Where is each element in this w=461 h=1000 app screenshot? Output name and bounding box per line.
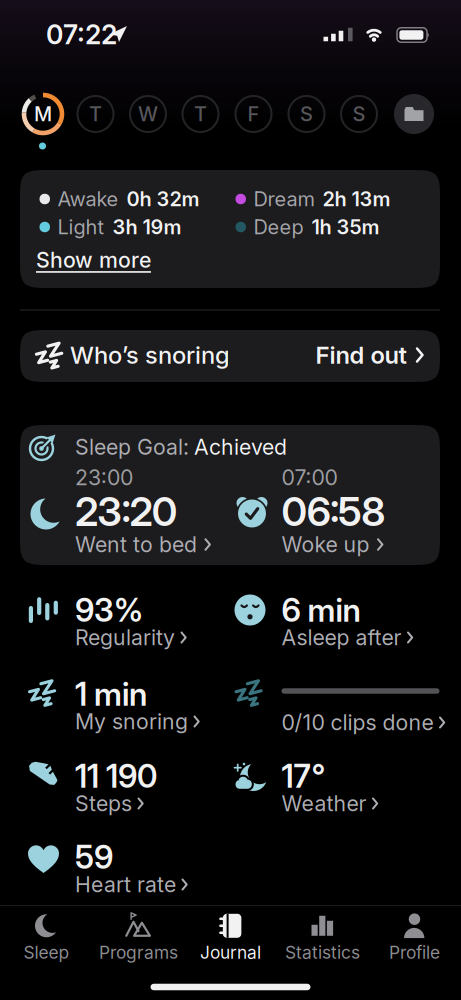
- button[interactable]: Went to bed: [75, 532, 211, 557]
- staticText: T: [194, 102, 207, 126]
- staticText: 23:20: [75, 487, 178, 536]
- staticText: Awake: [57, 187, 118, 211]
- staticText: Sleep: [23, 942, 69, 963]
- button[interactable]: All nights: [394, 94, 434, 134]
- staticText: Programs: [99, 942, 178, 963]
- staticText: 2h 13m: [322, 187, 390, 211]
- staticText: 6 min: [281, 591, 360, 629]
- button[interactable]: T: [73, 92, 117, 136]
- staticText: F: [247, 102, 259, 126]
- staticText: 07:00: [281, 465, 337, 490]
- button[interactable]: 1 min: [23, 664, 235, 740]
- staticText: Deep: [253, 215, 303, 239]
- staticText: Statistics: [285, 942, 360, 963]
- staticText: 1 min: [75, 675, 147, 713]
- button[interactable]: Show more: [36, 247, 151, 273]
- staticText: Light: [57, 215, 104, 239]
- staticText: Sleep Goal:: [75, 434, 189, 460]
- staticText: 23:00: [75, 465, 133, 490]
- staticText: Profile: [389, 942, 440, 963]
- staticText: 59: [75, 838, 113, 876]
- staticText: Woke up: [281, 532, 369, 557]
- staticText: 0h 32m: [126, 187, 199, 211]
- staticText: Weather: [281, 791, 366, 816]
- staticText: Show more: [36, 247, 151, 273]
- staticText: W: [138, 102, 158, 126]
- staticText: T: [89, 102, 102, 126]
- staticText: 3h 19m: [112, 215, 181, 239]
- button[interactable]: T: [178, 92, 222, 136]
- staticText: M: [34, 102, 52, 126]
- button[interactable]: 93%: [23, 580, 235, 656]
- staticText: Journal: [200, 942, 261, 963]
- button[interactable]: 59: [23, 827, 235, 903]
- button[interactable]: W: [126, 92, 170, 136]
- button[interactable]: Who’s snoring: [20, 330, 440, 382]
- staticText: 0/10 clips done: [281, 710, 433, 735]
- staticText: Achieved: [194, 434, 287, 460]
- button[interactable]: 0/10 clips done: [229, 664, 441, 740]
- staticText: Regularity: [75, 625, 175, 650]
- staticText: Dream: [253, 187, 314, 211]
- staticText: My snoring: [75, 709, 188, 734]
- button[interactable]: F: [231, 92, 275, 136]
- button[interactable]: Statistics: [276, 913, 368, 963]
- button[interactable]: M: [20, 91, 66, 137]
- button[interactable]: Woke up: [281, 532, 384, 557]
- staticText: Went to bed: [75, 532, 197, 557]
- staticText: S: [352, 102, 365, 126]
- button[interactable]: Profile: [368, 913, 460, 963]
- button[interactable]: S: [284, 92, 328, 136]
- button[interactable]: S: [337, 92, 381, 136]
- staticText: Heart rate: [75, 872, 176, 897]
- staticText: Asleep after: [281, 625, 401, 650]
- button[interactable]: 6 min: [229, 580, 441, 656]
- button[interactable]: Programs: [92, 913, 184, 963]
- button[interactable]: Sleep: [0, 913, 92, 963]
- staticText: 17°: [281, 757, 325, 795]
- button[interactable]: 17°: [229, 746, 441, 822]
- staticText: Find out: [315, 341, 406, 369]
- button[interactable]: 11 190: [23, 746, 235, 822]
- staticText: 06:58: [281, 487, 385, 536]
- staticText: 93%: [75, 591, 143, 629]
- staticText: 11 190: [75, 757, 157, 795]
- staticText: Steps: [75, 791, 132, 816]
- staticText: Who’s snoring: [70, 341, 230, 369]
- staticText: 07:22: [46, 19, 117, 50]
- staticText: S: [300, 102, 313, 126]
- button[interactable]: Journal: [184, 913, 276, 963]
- staticText: 1h 35m: [311, 215, 379, 239]
